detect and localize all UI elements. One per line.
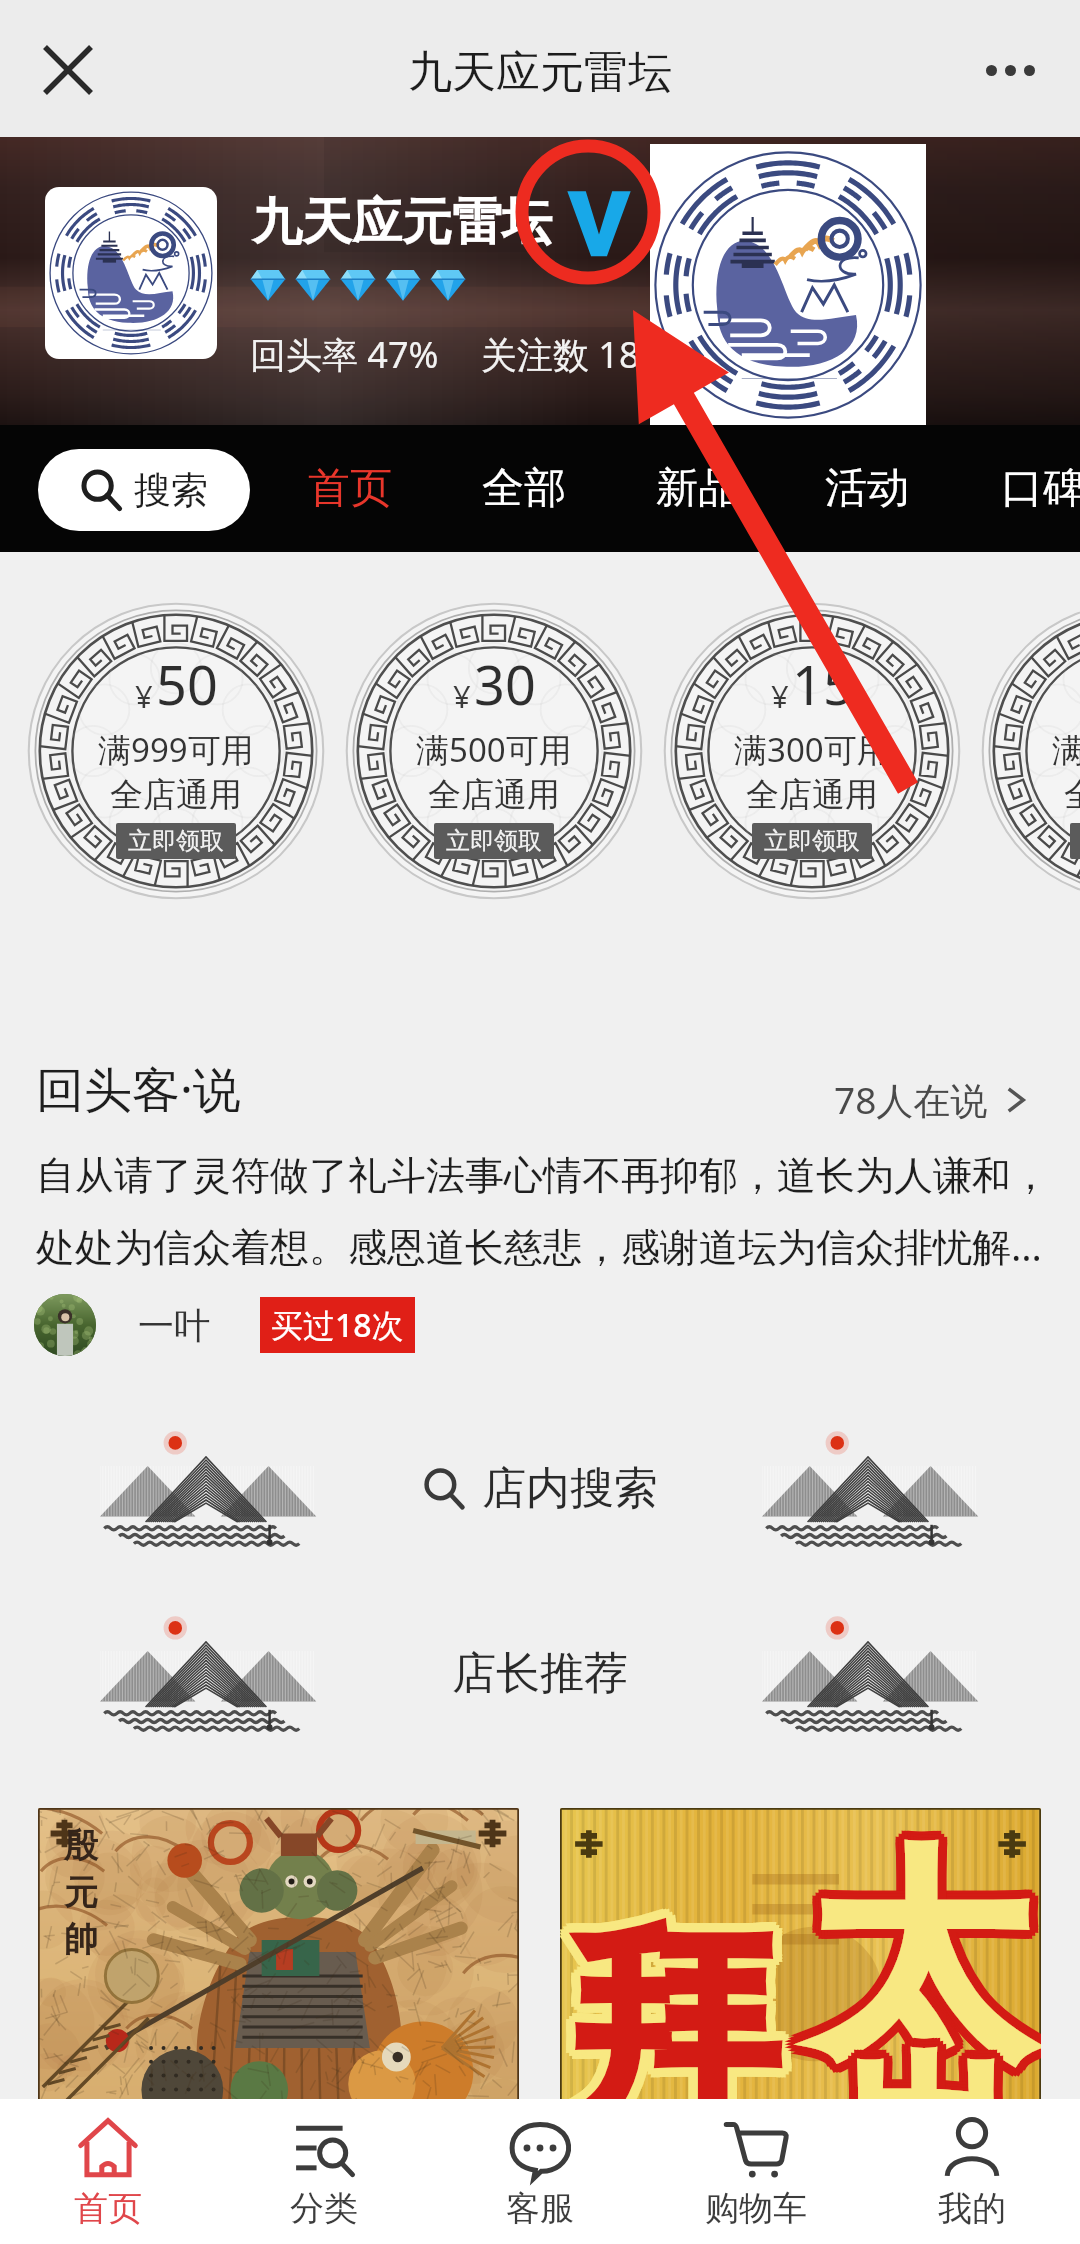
staticText: 拜 [575,1897,787,2108]
staticText: 太 [806,1819,1024,2094]
staticText: 太 [815,1828,1033,2103]
staticText: 拜 [569,1900,781,2108]
button[interactable]: ¥ [346,603,642,899]
staticText: 岁 [825,2029,1000,2108]
staticText: 回头率 47% [250,330,439,379]
staticText: 拜 [560,1897,772,2108]
staticText: 拜 [569,1906,781,2108]
staticText: 拜 [575,1900,787,2108]
staticText: 太 [815,1822,1033,2097]
staticText: 太 [803,1819,1021,2094]
staticText: 拜 [566,1894,778,2108]
button[interactable]: 客服 [432,2099,648,2244]
staticText: 15 [792,647,854,721]
staticText: 太 [818,1816,1036,2091]
staticText: 九天应元雷坛 [252,191,552,254]
staticText: 拜 [572,1900,784,2108]
button[interactable]: 拜太岁 商品 [560,1808,1041,2108]
staticText: 店内搜索 [482,1461,658,1516]
button[interactable]: 购物车 [648,2099,864,2244]
staticText: 太 [815,1819,1033,2094]
staticText: 岁 [822,2038,997,2108]
staticText: 拜 [569,1903,781,2108]
button[interactable]: Close [28,30,108,110]
staticText: 太 [803,1822,1021,2097]
button[interactable]: 全部 [462,425,586,552]
staticText: ¥ [135,675,153,717]
staticText: 太 [806,1816,1024,2091]
staticText: 满500可用 [416,727,572,772]
button[interactable]: ¥ [982,603,1080,899]
button[interactable]: More options [970,30,1050,110]
button[interactable]: ¥ [28,603,324,899]
staticText: 买过18次 [271,1303,404,1347]
button[interactable]: Shop logo [45,187,217,359]
staticText: 首页 [308,462,392,515]
staticText: 岁 [819,2035,994,2108]
staticText: 购物车 [705,2187,807,2230]
staticText: 拜 [569,1897,781,2108]
staticText: 自从请了灵符做了礼斗法事心情不再抑郁，道长为人谦和， [36,1151,1050,1200]
button[interactable]: 新品 [636,425,760,552]
staticText: 太 [812,1825,1030,2100]
staticText: 回头客·说 [36,1056,241,1122]
staticText: 岁 [831,2032,1006,2108]
staticText: 立即领取 [446,826,542,856]
staticText: 全店通用 [1064,774,1080,816]
staticText: 拜 [563,1891,775,2108]
button[interactable]: 搜索 [38,449,250,531]
staticText: 拜 [560,1903,772,2108]
staticText: 岁 [837,2035,1012,2108]
staticText: 岁 [837,2032,1012,2108]
staticText: 岁 [828,2029,1003,2108]
button[interactable]: 活动 [805,425,929,552]
button[interactable]: 我的 [864,2099,1080,2244]
button[interactable]: 78人在说 [834,1074,1030,1125]
staticText: 岁 [828,2038,1003,2108]
staticText: 太 [803,1825,1021,2100]
button[interactable]: ¥ [664,603,960,899]
staticText: 全店通用 [746,774,878,816]
staticText: 太 [821,1825,1039,2100]
staticText: 太 [809,1831,1027,2106]
staticText: 太 [812,1822,1030,2097]
staticText: 岁 [822,2035,997,2108]
staticText: 全部 [482,462,566,515]
staticText: 拜 [572,1903,784,2108]
staticText: 拜 [560,1900,769,2108]
staticText: 78人在说 [834,1074,988,1125]
staticText: 岁 [825,2038,1000,2108]
button[interactable]: 首页 [288,425,412,552]
staticText: 岁 [831,2041,1006,2108]
staticText: 搜索 [134,467,208,514]
staticText: 口碑 [1001,462,1080,515]
button[interactable]: 分类 [216,2099,432,2244]
staticText: 一叶 [138,1303,210,1348]
button[interactable]: 店内搜索 [422,1461,658,1516]
staticText: 太 [809,1816,1027,2091]
staticText: 拜 [572,1906,784,2108]
staticText: 拜 [563,1900,775,2108]
staticText: 客服 [506,2187,574,2230]
staticText: 太 [809,1813,1027,2088]
staticText: 店长推荐 [452,1646,628,1701]
staticText: 岁 [828,2023,1003,2108]
staticText: 岁 [822,2026,997,2108]
staticText: 首页 [74,2187,142,2230]
button[interactable]: 首页 [0,2099,216,2244]
staticText: 太 [815,1831,1033,2106]
staticText: 处处为信众着想。感恩道长慈悲，感谢道坛为信众排忧解… [36,1219,1042,1272]
staticText: 岁 [819,2032,994,2108]
button[interactable]: 殷元帅 商品 [38,1808,519,2108]
staticText: 岁 [828,2041,1003,2108]
staticText: 拜 [560,1900,772,2108]
staticText: 太 [815,1825,1033,2100]
button[interactable]: 店长推荐 [452,1646,628,1701]
staticText: ¥ [771,675,789,717]
staticText: 太 [821,1822,1039,2097]
staticText: 太 [809,1825,1027,2100]
staticText: 太 [812,1813,1030,2088]
staticText: 岁 [834,2029,1009,2108]
staticText: 太 [818,1825,1036,2100]
button[interactable]: 口碑 [981,425,1080,552]
